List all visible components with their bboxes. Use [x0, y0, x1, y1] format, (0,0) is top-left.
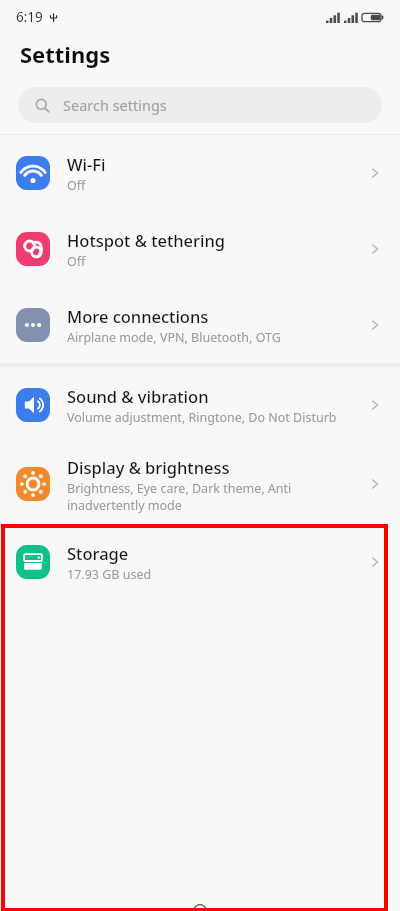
button[interactable]: Storage [0, 525, 400, 599]
staticText: More connections [67, 305, 209, 327]
staticText: Settings [20, 39, 111, 69]
staticText: Volume adjustment, Ringtone, Do Not Dist… [67, 409, 337, 426]
button[interactable]: Sound & vibration [0, 367, 400, 443]
staticText: Storage [67, 542, 129, 564]
staticText: Sound & vibration [67, 385, 209, 407]
staticText: Airplane mode, VPN, Bluetooth, OTG [67, 329, 281, 346]
staticText: Search settings [63, 95, 167, 115]
button[interactable]: Search settings [18, 87, 382, 123]
button[interactable]: More connections [0, 287, 400, 363]
staticText: Off [67, 177, 86, 194]
button[interactable]: Display & brightness [0, 443, 400, 525]
staticText: 6:19 [16, 8, 43, 26]
staticText: 17.93 GB used [67, 566, 152, 583]
button[interactable]: Hotspot & tethering [0, 211, 400, 287]
button[interactable]: Wi-Fi [0, 135, 400, 211]
staticText: Off [67, 253, 86, 270]
staticText: Wi-Fi [67, 153, 106, 175]
staticText: Display & brightness [67, 456, 230, 478]
staticText: Brightness, Eye care, Dark theme, Anti i… [67, 480, 358, 513]
staticText: Hotspot & tethering [67, 229, 226, 251]
